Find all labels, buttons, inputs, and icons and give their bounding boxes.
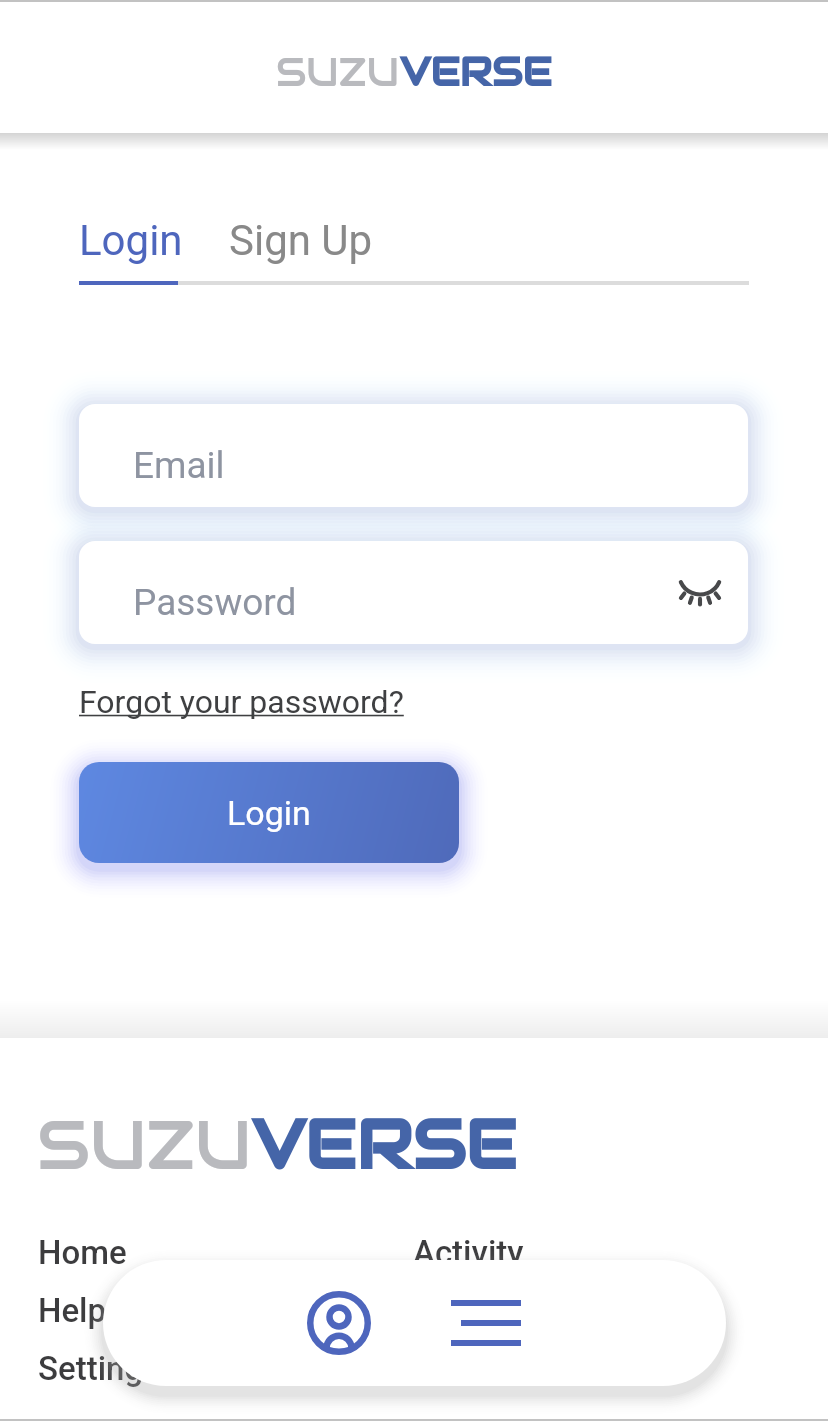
button[interactable]: Login <box>79 216 183 265</box>
staticText: Help <box>38 1291 107 1330</box>
button[interactable]: Forgot your password? <box>79 683 404 721</box>
button[interactable]: Sign Up <box>229 216 373 265</box>
staticText: Forgot your password? <box>79 683 404 721</box>
staticText: Settings <box>38 1349 161 1388</box>
button[interactable]: Login <box>79 762 459 863</box>
staticText: Login <box>227 793 311 833</box>
button[interactable]: Password <box>79 541 748 644</box>
button[interactable]: Help <box>38 1291 107 1330</box>
button[interactable]: Menu <box>440 1277 532 1369</box>
staticText: Home <box>38 1233 127 1272</box>
staticText: VERSE <box>400 47 552 97</box>
button[interactable]: Email <box>79 404 748 507</box>
button[interactable]: Show password <box>671 567 729 625</box>
staticText: SUZU <box>276 47 400 97</box>
staticText: Password <box>133 581 297 624</box>
staticText: Activity <box>413 1233 524 1272</box>
button[interactable]: Settings <box>38 1349 161 1388</box>
staticText: SUZU <box>37 1102 252 1189</box>
button[interactable]: Home <box>38 1233 127 1272</box>
button[interactable]: Activity <box>413 1233 524 1272</box>
staticText: VERSE <box>252 1102 517 1189</box>
staticText: Email <box>133 444 225 487</box>
button[interactable]: Account <box>293 1277 385 1369</box>
